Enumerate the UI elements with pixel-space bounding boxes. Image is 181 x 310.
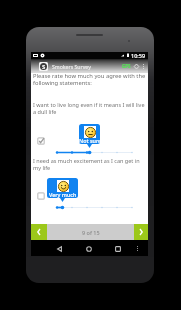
staticText: 9 of 15 bbox=[82, 229, 100, 236]
button[interactable]: Home bbox=[83, 243, 94, 254]
button[interactable]: Rating slider bbox=[57, 149, 132, 156]
button[interactable]: Back bbox=[54, 243, 65, 254]
button[interactable]: Menu bbox=[137, 246, 138, 251]
button[interactable]: Rating slider bbox=[57, 204, 132, 211]
staticText: Not sure bbox=[79, 137, 100, 144]
button[interactable]: Recents bbox=[112, 243, 123, 254]
button[interactable]: Next bbox=[134, 224, 148, 240]
button[interactable]: Very much bbox=[47, 178, 78, 198]
staticText: 10:59 bbox=[131, 52, 146, 59]
button[interactable]: Checkbox bbox=[37, 192, 45, 200]
button[interactable]: Not sure bbox=[79, 124, 100, 144]
staticText: I want to live long even if it means I w… bbox=[33, 101, 145, 115]
other: Location bbox=[133, 63, 140, 70]
staticText: I need as much excitement as I can get i… bbox=[33, 157, 140, 171]
button[interactable]: Previous bbox=[31, 224, 47, 240]
staticText: Very much bbox=[49, 191, 77, 198]
staticText: Please rate how much you agree with the … bbox=[33, 72, 146, 87]
staticText: S bbox=[42, 63, 46, 70]
staticText: GPS bbox=[122, 63, 131, 69]
button[interactable]: Checkbox bbox=[37, 137, 45, 145]
staticText: Smokers Survey bbox=[52, 63, 91, 70]
button[interactable]: More options bbox=[142, 64, 145, 69]
